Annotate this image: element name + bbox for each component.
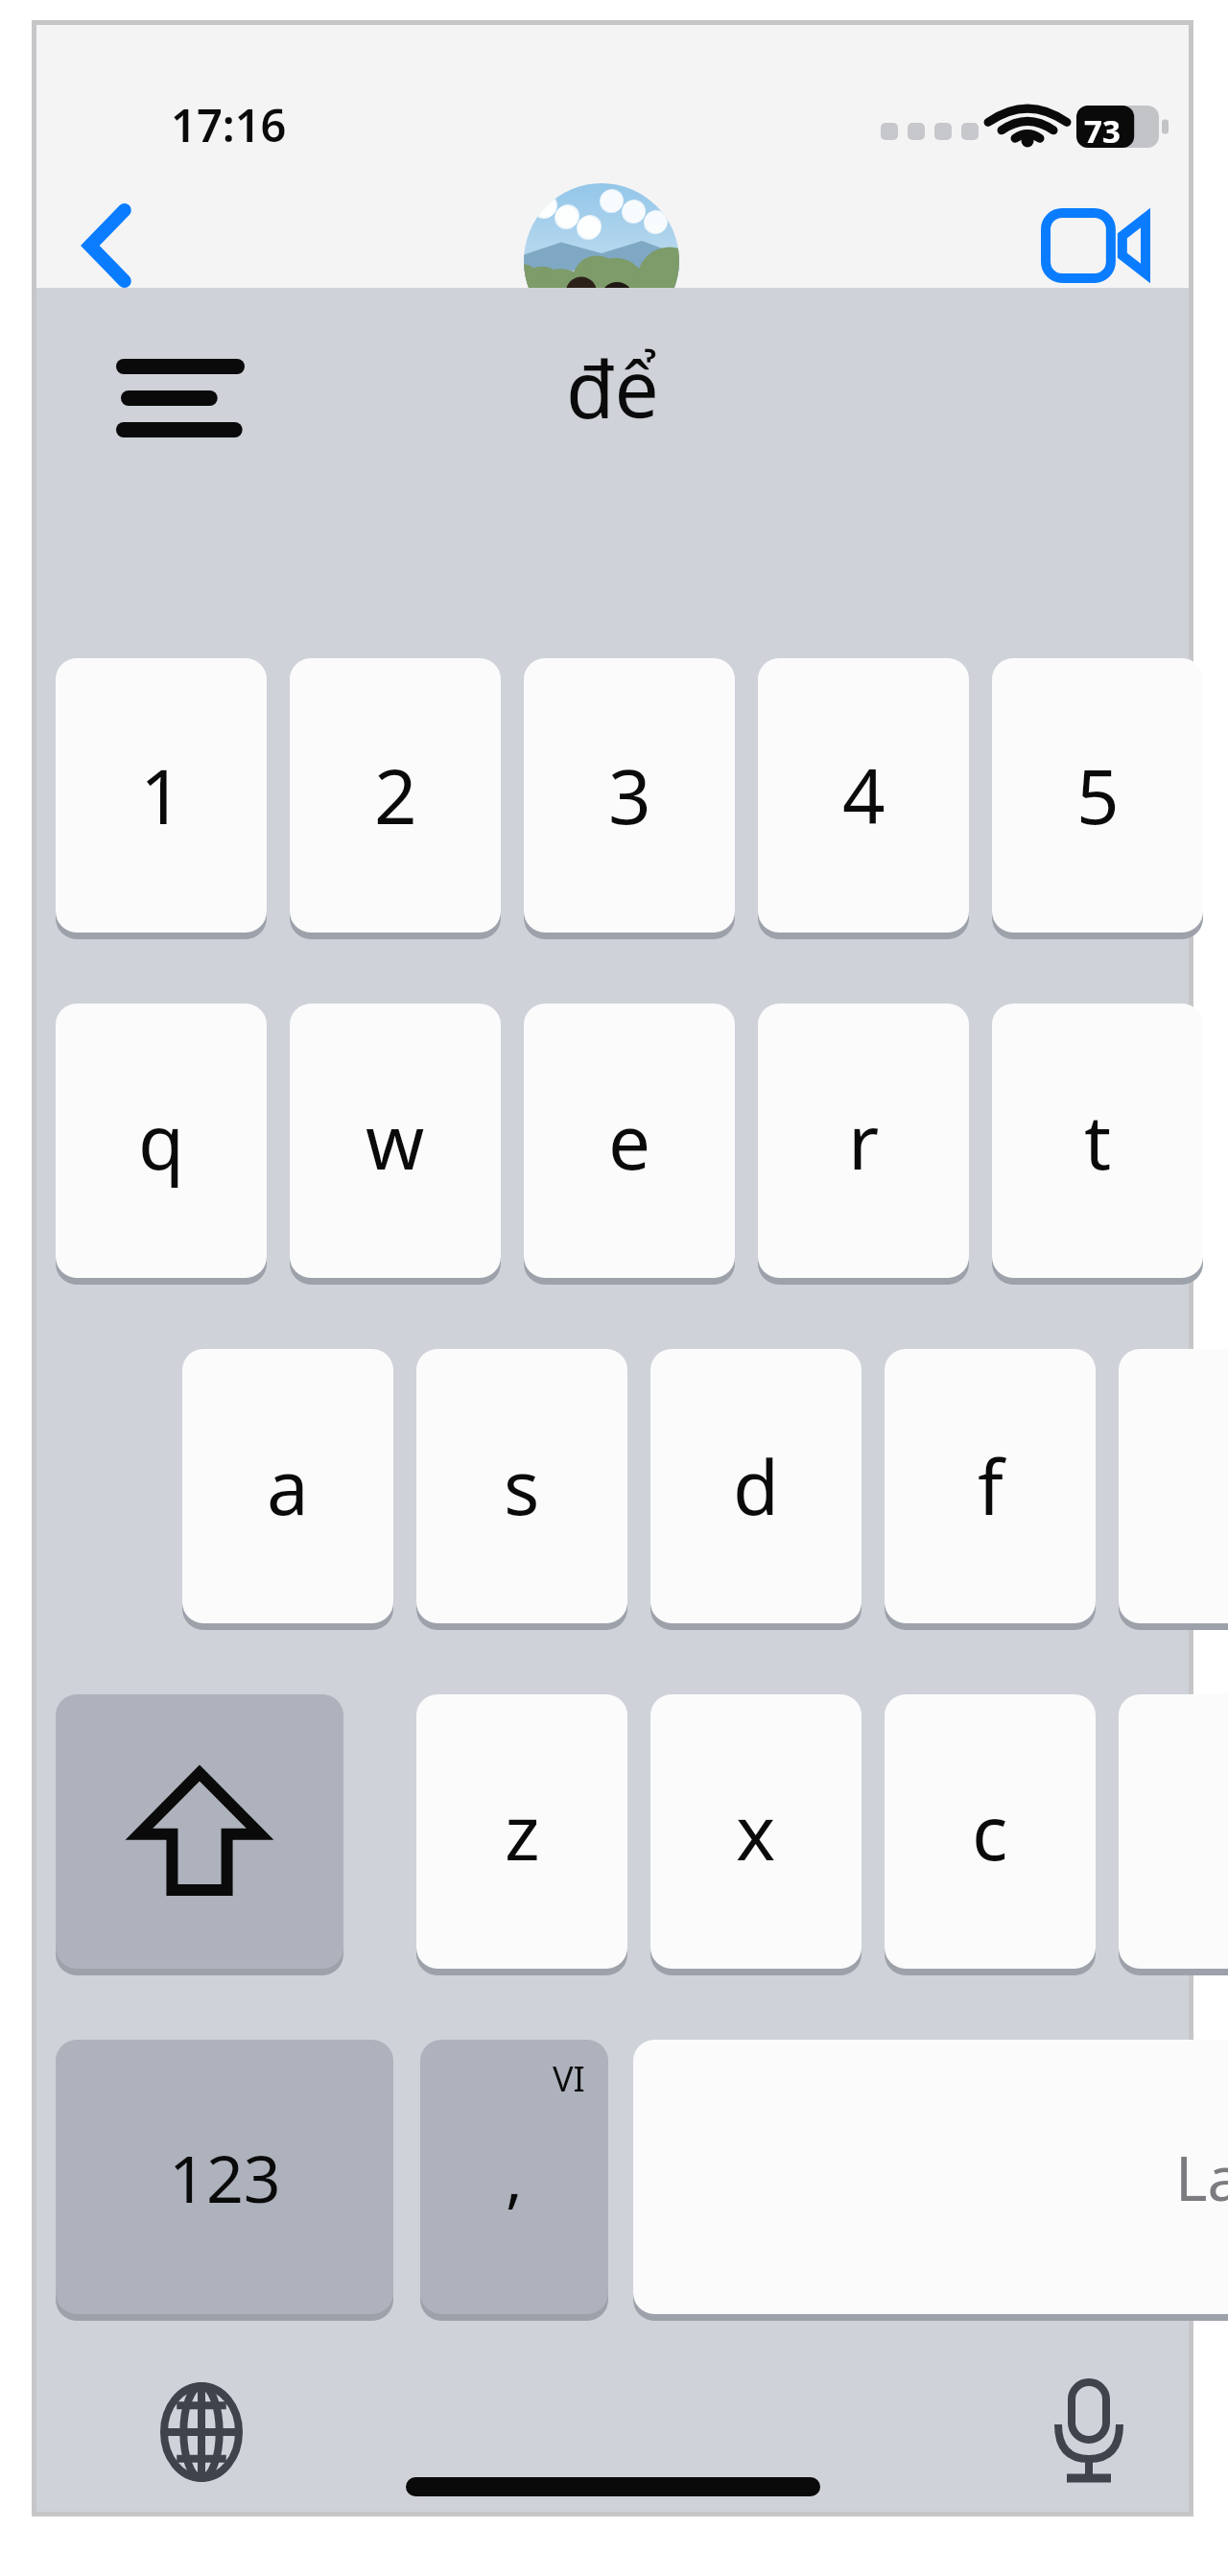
staticText: 123	[169, 2133, 281, 2222]
staticText: a	[267, 1435, 309, 1537]
button[interactable]: f	[885, 1349, 1096, 1623]
button[interactable]: 2	[290, 658, 501, 933]
staticText: 73	[1084, 109, 1121, 153]
button[interactable]: e	[524, 1004, 735, 1278]
button[interactable]: để	[566, 334, 659, 441]
staticText: c	[972, 1781, 1008, 1882]
button[interactable]: c	[885, 1694, 1096, 1969]
staticText: 4	[842, 744, 886, 846]
staticText: VI	[553, 2055, 585, 2102]
button[interactable]	[56, 1694, 343, 1969]
button[interactable]: Change keyboard language	[137, 2368, 266, 2496]
button[interactable]: Dictate	[1025, 2368, 1153, 2496]
staticText: ,	[506, 2134, 523, 2220]
button[interactable]: Back	[56, 193, 161, 298]
button[interactable]: ,	[420, 2040, 608, 2314]
button[interactable]: w	[290, 1004, 501, 1278]
button[interactable]: a	[182, 1349, 393, 1623]
button[interactable]: Contact photo	[524, 183, 679, 339]
button[interactable]: d	[650, 1349, 862, 1623]
staticText: d	[733, 1435, 779, 1537]
button[interactable]: x	[650, 1694, 862, 1969]
staticText: q	[138, 1090, 184, 1192]
staticText: s	[504, 1435, 540, 1537]
button[interactable]: Lab	[633, 2040, 1228, 2314]
staticText: e	[608, 1090, 650, 1192]
button[interactable]: Keyboard menu	[94, 336, 267, 461]
staticText: 5	[1076, 744, 1120, 846]
staticText: 1	[140, 744, 183, 846]
staticText: 2	[374, 744, 417, 846]
button[interactable]: q	[56, 1004, 267, 1278]
button[interactable]: t	[992, 1004, 1203, 1278]
button[interactable]: 4	[758, 658, 969, 933]
staticText: 3	[608, 744, 651, 846]
button[interactable]: FaceTime video call	[1034, 196, 1159, 295]
staticText: f	[978, 1435, 1004, 1537]
button[interactable]: r	[758, 1004, 969, 1278]
button[interactable]: 1	[56, 658, 267, 933]
staticText: t	[1084, 1090, 1112, 1192]
staticText: z	[505, 1781, 540, 1882]
staticText: 17:16	[171, 94, 287, 155]
button[interactable]: s	[416, 1349, 627, 1623]
staticText: Lab	[1175, 2136, 1228, 2219]
button[interactable]: 3	[524, 658, 735, 933]
button[interactable]: z	[416, 1694, 627, 1969]
staticText: x	[736, 1781, 776, 1882]
staticText: r	[848, 1090, 880, 1192]
button[interactable]: 5	[992, 658, 1203, 933]
button[interactable]: 123	[56, 2040, 393, 2314]
button[interactable]	[1119, 1694, 1228, 1969]
button[interactable]	[1119, 1349, 1228, 1623]
staticText: w	[366, 1090, 425, 1192]
